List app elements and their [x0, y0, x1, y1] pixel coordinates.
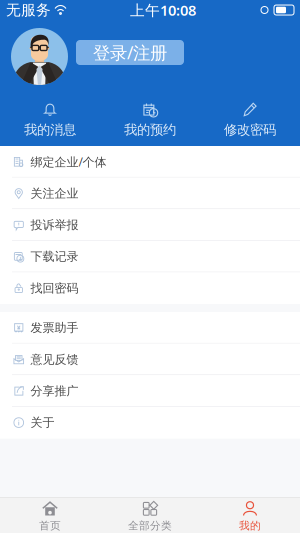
staticText: 上午10:08	[130, 0, 196, 20]
button[interactable]: 登录/注册	[76, 40, 184, 65]
staticText: 全部分类	[128, 519, 172, 532]
staticText: 找回密码	[30, 281, 78, 295]
button[interactable]: 找回密码	[0, 272, 300, 304]
button[interactable]: 关于	[0, 407, 300, 438]
staticText: 我的消息	[24, 122, 76, 138]
button[interactable]: 关注企业	[0, 178, 300, 209]
staticText: 分享推广	[30, 384, 78, 398]
staticText: 我的	[239, 519, 261, 532]
button[interactable]: 我的消息	[0, 102, 100, 138]
button[interactable]: 投诉举报	[0, 209, 300, 241]
button[interactable]: 意见反馈	[0, 344, 300, 375]
staticText: 我的预约	[124, 122, 176, 138]
button[interactable]: 绑定企业/个体	[0, 146, 300, 178]
staticText: 投诉举报	[30, 218, 78, 232]
staticText: 绑定企业/个体	[30, 154, 106, 170]
button[interactable]: 我的预约	[100, 102, 200, 138]
staticText: 意见反馈	[30, 352, 78, 367]
staticText: 关注企业	[30, 186, 78, 201]
staticText: 首页	[39, 519, 61, 532]
staticText: 无服务	[6, 1, 51, 19]
button[interactable]: 全部分类	[100, 497, 200, 533]
button[interactable]: 修改密码	[200, 102, 300, 138]
staticText: 登录/注册	[93, 41, 167, 64]
staticText: 关于	[30, 415, 54, 430]
staticText: 发票助手	[30, 320, 78, 335]
staticText: 修改密码	[224, 122, 276, 138]
button[interactable]: 发票助手	[0, 312, 300, 344]
button[interactable]: 首页	[0, 497, 100, 533]
button[interactable]: 我的	[200, 497, 300, 533]
button[interactable]: 分享推广	[0, 375, 300, 407]
staticText: 下载记录	[30, 249, 78, 264]
button[interactable]: 下载记录	[0, 241, 300, 272]
